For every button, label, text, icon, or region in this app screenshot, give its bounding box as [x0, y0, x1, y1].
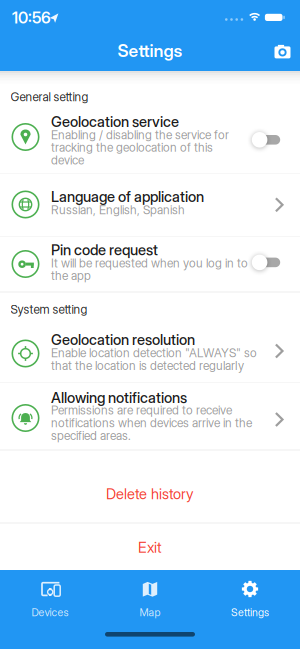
- staticText: Geolocation service: [51, 113, 179, 130]
- button[interactable]: Allowing notifications: [0, 383, 300, 450]
- staticText: notifications when devices arrive in the: [51, 416, 252, 430]
- staticText: Settings: [117, 40, 182, 61]
- staticText: System setting: [10, 302, 87, 316]
- staticText: Language of application: [51, 188, 204, 205]
- button[interactable]: Toggle Pin code request: [251, 254, 279, 270]
- staticText: 10:56: [12, 8, 51, 27]
- staticText: Allowing notifications: [51, 389, 187, 406]
- button[interactable]: Exit: [0, 529, 300, 565]
- staticText: Enable location detection "ALWAYS" so: [51, 346, 257, 360]
- staticText: It will be requested when you log in to: [51, 256, 248, 270]
- button[interactable]: Toggle Geolocation service: [251, 131, 279, 148]
- staticText: that the location is detected regularly: [51, 358, 244, 373]
- staticText: Delete history: [106, 485, 194, 503]
- staticText: the app: [51, 269, 91, 283]
- button[interactable]: Settings: [200, 570, 300, 620]
- staticText: General setting: [10, 90, 88, 104]
- staticText: device: [51, 153, 84, 167]
- staticText: Geolocation resolution: [51, 331, 195, 348]
- button[interactable]: Map: [100, 570, 200, 620]
- staticText: tracking the geolocation of this: [51, 140, 213, 155]
- staticText: Pin code request: [51, 241, 158, 259]
- staticText: Enabling / disabling the service for: [51, 128, 229, 142]
- staticText: Permissions are required to receive: [51, 403, 232, 417]
- button[interactable]: Devices: [0, 570, 100, 620]
- button[interactable]: Camera: [266, 37, 298, 65]
- staticText: Settings: [231, 606, 269, 619]
- button[interactable]: Geolocation resolution: [0, 320, 300, 383]
- button[interactable]: Delete history: [0, 473, 300, 515]
- staticText: Devices: [31, 606, 68, 619]
- button[interactable]: Language of application: [0, 173, 300, 237]
- staticText: Exit: [138, 539, 162, 556]
- staticText: Russian, English, Spanish: [51, 203, 185, 217]
- staticText: Map: [139, 606, 160, 619]
- staticText: specified areas.: [51, 428, 131, 443]
